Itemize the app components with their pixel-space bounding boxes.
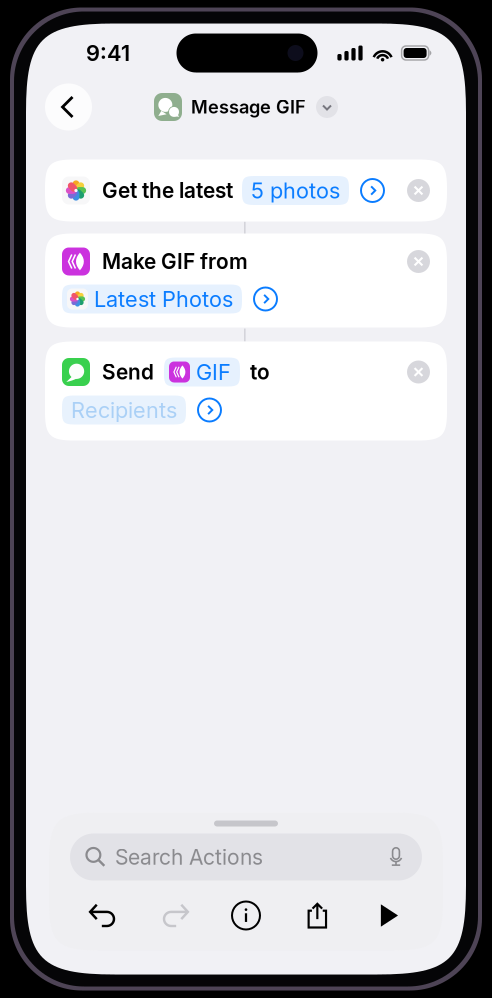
staticText: Message GIF	[191, 96, 306, 118]
button[interactable]: Get the latest	[45, 159, 447, 221]
staticText: Latest Photos	[94, 286, 233, 312]
button[interactable]: Search Actions	[70, 833, 422, 880]
staticText: 9:41	[86, 40, 130, 66]
button[interactable]: Share	[291, 889, 343, 941]
staticText: Get the latest	[102, 178, 233, 203]
button[interactable]: Make GIF from	[45, 233, 447, 327]
staticText: 5 photos	[251, 177, 340, 204]
button[interactable]: Undo	[77, 889, 129, 941]
staticText: Recipients	[71, 397, 177, 423]
staticText: Make GIF from	[102, 249, 248, 274]
button[interactable]: Back	[45, 83, 92, 130]
staticText: Send	[102, 359, 154, 385]
button[interactable]: Send	[45, 341, 447, 440]
staticText: GIF	[196, 359, 231, 385]
button[interactable]: Shortcut options	[316, 96, 338, 118]
staticText: to	[250, 359, 270, 385]
button[interactable]: Run shortcut	[363, 889, 415, 941]
staticText: Search Actions	[115, 844, 263, 870]
button[interactable]: Redo	[149, 889, 201, 941]
button[interactable]: Info	[220, 889, 272, 941]
